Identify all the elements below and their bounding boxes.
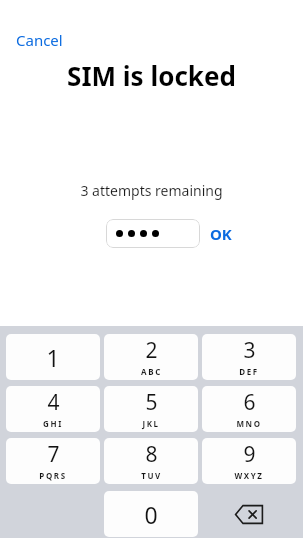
staticText: 1 <box>46 342 60 373</box>
button[interactable]: 6 <box>202 386 296 432</box>
staticText: 0 <box>144 499 158 530</box>
staticText: 2 <box>145 336 158 365</box>
button[interactable]: 2 <box>104 334 198 380</box>
button[interactable]: 7 <box>6 438 100 484</box>
button[interactable] <box>106 219 200 248</box>
staticText: SIM is locked <box>67 58 236 93</box>
button[interactable]: 9 <box>202 438 296 484</box>
staticText: Cancel <box>16 30 63 50</box>
staticText: TUV <box>141 470 162 481</box>
button[interactable]: Delete <box>202 491 296 537</box>
button[interactable]: OK <box>204 220 238 248</box>
staticText: DEF <box>239 366 259 377</box>
staticText: 7 <box>47 440 60 469</box>
staticText: 4 <box>47 388 60 417</box>
staticText: JKL <box>142 418 160 429</box>
staticText: OK <box>210 224 232 244</box>
staticText: 6 <box>243 388 256 417</box>
staticText: GHI <box>43 418 63 429</box>
staticText: MNO <box>236 418 262 429</box>
staticText: WXYZ <box>234 470 264 481</box>
staticText: 5 <box>145 388 158 417</box>
button[interactable]: Cancel <box>10 26 69 54</box>
button[interactable]: 4 <box>6 386 100 432</box>
staticText: 9 <box>243 440 256 469</box>
button[interactable]: 0 <box>104 491 198 537</box>
button[interactable]: 1 <box>6 334 100 380</box>
staticText: PQRS <box>39 470 67 481</box>
staticText: 3 attempts remaining <box>80 181 223 200</box>
staticText: 8 <box>145 440 158 469</box>
button[interactable]: 3 <box>202 334 296 380</box>
staticText: 3 <box>243 336 256 365</box>
button[interactable]: 8 <box>104 438 198 484</box>
button[interactable]: 5 <box>104 386 198 432</box>
staticText: ABC <box>141 366 162 377</box>
